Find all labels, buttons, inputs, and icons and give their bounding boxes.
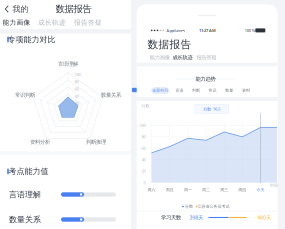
button[interactable]: 成长轨迹 xyxy=(172,53,192,61)
button[interactable]: 数量 xyxy=(223,87,235,93)
staticText: 20 xyxy=(74,101,78,106)
staticText: 周一 xyxy=(184,187,192,192)
staticText: 80 xyxy=(141,134,145,139)
staticText: 周六 xyxy=(147,187,155,192)
staticText: 资料 xyxy=(242,88,250,93)
staticText: 398天 xyxy=(189,214,203,221)
staticText: 周三 xyxy=(220,187,228,192)
staticText: 我的 xyxy=(12,4,28,14)
staticText: 0 xyxy=(143,180,145,185)
button[interactable]: 全部科目 xyxy=(152,88,169,93)
button[interactable]: 报告答疑 xyxy=(196,53,216,61)
staticText: 时间 xyxy=(270,183,278,188)
button[interactable]: 我的 xyxy=(0,2,32,16)
staticText: 40 xyxy=(74,94,78,99)
staticText: 专项能力对比 xyxy=(7,35,55,44)
button[interactable]: 能力画像 xyxy=(1,17,31,27)
staticText: 数据报告 xyxy=(55,3,91,15)
staticText: 能力趋势 xyxy=(195,76,215,82)
staticText: 常识 xyxy=(209,88,217,93)
staticText: 报告答疑 xyxy=(196,54,216,61)
staticText: 80 xyxy=(74,79,78,84)
button[interactable]: 能力画像 xyxy=(150,53,170,61)
staticText: 言语理解 xyxy=(58,61,78,67)
staticText: 480天 xyxy=(257,214,271,221)
staticText: 成长轨迹 xyxy=(38,18,66,27)
staticText: 100 xyxy=(74,72,80,77)
staticText: 判断推理 xyxy=(86,139,106,145)
staticText: 常识判断 xyxy=(15,92,35,98)
staticText: 周二 xyxy=(202,187,210,192)
staticText: 能力画像 xyxy=(150,54,170,61)
staticText: 20 xyxy=(141,168,145,174)
staticText: 今天 xyxy=(256,187,264,192)
button[interactable]: 言语 xyxy=(173,87,185,93)
staticText: 考点能力值 xyxy=(8,166,48,176)
staticText: 能力画像 xyxy=(2,18,30,27)
staticText: 数据报告 xyxy=(147,38,191,51)
staticText: 分数 96.5 xyxy=(203,106,220,112)
button[interactable]: 判断 xyxy=(190,87,202,93)
staticText: 周日 xyxy=(166,187,174,192)
staticText: 周四 xyxy=(238,187,246,192)
staticText: 100 xyxy=(139,123,145,128)
staticText: 数量 xyxy=(225,88,233,93)
staticText: 成长轨迹 xyxy=(172,54,192,61)
button[interactable]: 数量关系 xyxy=(0,207,131,229)
staticText: 言语理解 xyxy=(9,190,41,199)
staticText: 资料分析 xyxy=(30,139,50,145)
staticText: 数量关系 xyxy=(101,92,121,98)
staticText: 100 % xyxy=(245,28,255,33)
staticText: 60 xyxy=(74,86,78,92)
button[interactable]: 常识 xyxy=(207,87,219,93)
staticText: 分数 xyxy=(141,103,149,108)
staticText: 60 xyxy=(141,145,145,151)
staticText: 判断 xyxy=(192,88,200,93)
staticText: Appilum xyxy=(166,28,181,33)
staticText: 40 xyxy=(141,157,145,162)
staticText: 全部科目 xyxy=(152,88,168,93)
button[interactable]: 报告答疑 xyxy=(73,17,103,27)
staticText: 江苏省公务员考试 xyxy=(197,204,229,209)
staticText: 学习天数 xyxy=(161,214,181,221)
button[interactable]: 资料 xyxy=(240,87,252,93)
staticText: 11:27 AM xyxy=(199,28,216,33)
button[interactable]: 成长轨迹 xyxy=(37,17,67,27)
staticText: 分数 xyxy=(185,204,193,209)
button[interactable]: 言语理解 xyxy=(0,182,131,207)
staticText: 报告答疑 xyxy=(74,18,102,27)
staticText: 言语 xyxy=(175,88,183,93)
staticText: 数量关系 xyxy=(9,215,41,224)
